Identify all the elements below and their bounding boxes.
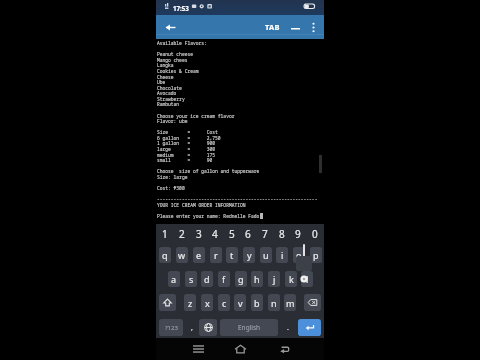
- button[interactable]: k: [285, 271, 297, 287]
- staticText: medium = 175: [157, 152, 216, 158]
- button[interactable]: p: [310, 247, 322, 263]
- staticText: 7: [262, 227, 268, 241]
- staticText: Mango chees: [157, 57, 188, 63]
- staticText: Choose size of gallon and tupperware: [157, 168, 260, 174]
- button[interactable]: 4: [209, 224, 221, 244]
- staticText: Peanut cheese: [157, 51, 193, 57]
- staticText: g: [238, 273, 244, 285]
- button[interactable]: n: [268, 294, 280, 311]
- button[interactable]: 6: [242, 224, 254, 244]
- staticText: f: [222, 273, 226, 285]
- button[interactable]: q: [159, 247, 171, 263]
- staticText: c: [222, 297, 227, 309]
- button[interactable]: Home: [228, 338, 252, 360]
- staticText: l: [306, 273, 309, 285]
- button[interactable]: t: [226, 247, 238, 263]
- staticText: Available Flavors:: [157, 40, 207, 46]
- button[interactable]: Back: [272, 338, 296, 360]
- button[interactable]: 3: [193, 224, 205, 244]
- staticText: 1 gallon = 900: [157, 140, 216, 146]
- staticText: 0: [312, 227, 318, 241]
- staticText: Size: large: [157, 174, 188, 180]
- staticText: k: [289, 273, 294, 285]
- staticText: o: [296, 249, 302, 261]
- staticText: ,: [191, 323, 193, 333]
- button[interactable]: Recent apps: [186, 338, 210, 360]
- button[interactable]: ?123: [159, 319, 183, 336]
- staticText: h: [254, 273, 260, 285]
- button[interactable]: z: [184, 294, 196, 311]
- staticText: 6: [245, 227, 251, 241]
- button[interactable]: 1: [159, 224, 171, 244]
- staticText: a: [171, 273, 177, 285]
- button[interactable]: u: [260, 247, 272, 263]
- button[interactable]: y: [243, 247, 255, 263]
- staticText: w: [178, 249, 186, 261]
- button[interactable]: g: [235, 271, 247, 287]
- button[interactable]: c: [218, 294, 230, 311]
- staticText: n: [271, 297, 277, 309]
- button[interactable]: ,: [186, 319, 197, 336]
- staticText: ?123: [165, 324, 178, 332]
- staticText: small = 90: [157, 157, 213, 163]
- button[interactable]: Language: [199, 319, 217, 336]
- button[interactable]: s: [185, 271, 197, 287]
- staticText: 5: [229, 227, 235, 241]
- button[interactable]: a: [168, 271, 180, 287]
- staticText: Cheese: [157, 74, 174, 80]
- staticText: y: [247, 249, 252, 261]
- button[interactable]: English: [220, 319, 278, 336]
- staticText: Avocado: [157, 90, 177, 96]
- button[interactable]: 5: [226, 224, 238, 244]
- button[interactable]: 7: [259, 224, 271, 244]
- button[interactable]: Back: [158, 15, 182, 39]
- button[interactable]: b: [251, 294, 263, 311]
- button[interactable]: x: [201, 294, 213, 311]
- staticText: .: [287, 323, 289, 333]
- button[interactable]: Backspace: [304, 294, 321, 311]
- button[interactable]: r: [210, 247, 222, 263]
- staticText: b: [254, 297, 260, 309]
- staticText: large = 300: [157, 146, 216, 152]
- staticText: t: [230, 249, 234, 261]
- staticText: s: [189, 273, 194, 285]
- staticText: d: [204, 273, 210, 285]
- button[interactable]: Enter: [298, 319, 321, 336]
- staticText: 4: [212, 227, 218, 241]
- button[interactable]: TAB: [260, 15, 284, 39]
- button[interactable]: Minimize: [286, 15, 304, 39]
- staticText: z: [188, 297, 193, 309]
- button[interactable]: d: [201, 271, 213, 287]
- button[interactable]: Shift: [159, 294, 176, 311]
- button[interactable]: 9: [292, 224, 304, 244]
- staticText: p: [313, 249, 319, 261]
- staticText: TAB: [265, 22, 280, 32]
- button[interactable]: j: [268, 271, 280, 287]
- button[interactable]: h: [251, 271, 263, 287]
- button[interactable]: w: [176, 247, 188, 263]
- staticText: English: [238, 323, 261, 332]
- staticText: j: [273, 273, 276, 285]
- button[interactable]: v: [234, 294, 246, 311]
- button[interactable]: e: [193, 247, 205, 263]
- staticText: r: [214, 249, 218, 261]
- staticText: ----------------------------------------…: [157, 196, 318, 202]
- staticText: Cost: ₱300: [157, 185, 185, 191]
- staticText: Choose your ice cream flavor: [157, 113, 235, 119]
- staticText: m: [286, 297, 295, 309]
- button[interactable]: f: [218, 271, 230, 287]
- button[interactable]: 0: [309, 224, 321, 244]
- staticText: u: [263, 249, 269, 261]
- button[interactable]: l: [301, 271, 313, 287]
- button[interactable]: 8: [276, 224, 288, 244]
- button[interactable]: .: [282, 319, 293, 336]
- button[interactable]: i: [276, 247, 288, 263]
- button[interactable]: 2: [176, 224, 188, 244]
- button[interactable]: More options: [305, 15, 322, 39]
- staticText: 9: [295, 227, 301, 241]
- button[interactable]: m: [284, 294, 296, 311]
- button[interactable]: o: [293, 247, 305, 263]
- staticText: 3: [196, 227, 202, 241]
- staticText: 8: [279, 227, 285, 241]
- staticText: v: [238, 297, 243, 309]
